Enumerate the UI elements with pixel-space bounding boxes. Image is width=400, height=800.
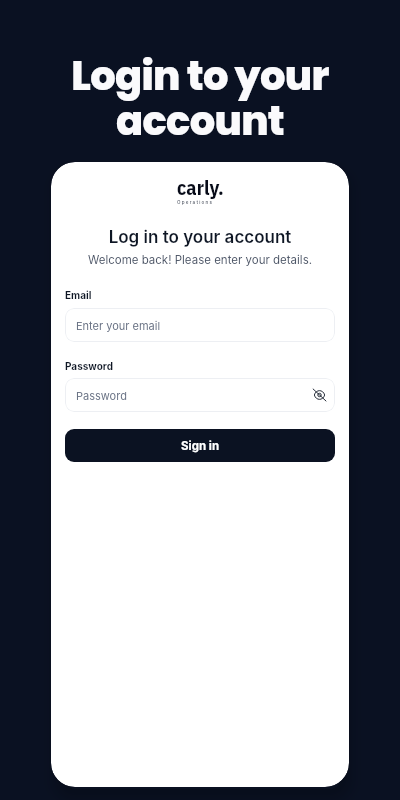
staticText: Login to your account: [0, 48, 400, 149]
button[interactable]: Sign in: [65, 429, 335, 462]
staticText: Welcome back! Please enter your details.: [65, 253, 335, 267]
staticText: Operations: [177, 200, 214, 206]
staticText: carly.: [177, 174, 224, 200]
button[interactable]: Show password: [127, 384, 325, 406]
staticText: Email: [65, 289, 92, 301]
staticText: Password: [65, 360, 113, 372]
staticText: Enter your email: [76, 319, 161, 332]
button[interactable]: Password: [65, 378, 335, 412]
staticText: Sign in: [181, 439, 220, 453]
staticText: Log in to your account: [65, 227, 335, 248]
button[interactable]: Enter your email: [65, 308, 335, 342]
staticText: Password: [76, 389, 127, 402]
